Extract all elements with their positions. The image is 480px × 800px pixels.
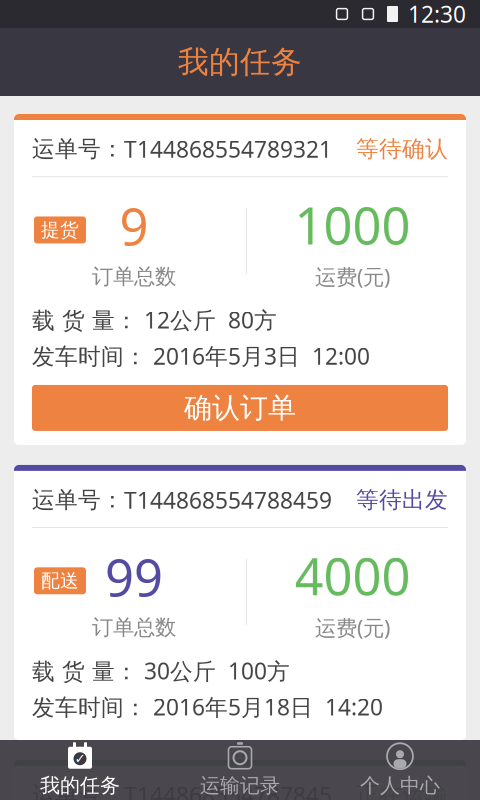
staticText: 12:30 (408, 0, 466, 29)
staticText: 运单号： (32, 486, 124, 514)
staticText: 等待确认 (356, 135, 448, 163)
button[interactable]: 运输记录 (160, 740, 320, 800)
staticText: 我的任务 (40, 773, 120, 798)
staticText: T144868554787845 (124, 780, 332, 800)
staticText: 确认订单 (184, 391, 296, 425)
staticText: 运单号： (32, 781, 124, 800)
staticText: ✓ (74, 751, 85, 766)
staticText: 运费(元) (315, 262, 390, 291)
button[interactable]: 运单号： (14, 114, 466, 445)
button[interactable]: ✓ (0, 740, 160, 800)
staticText: T144868554789321 (124, 134, 332, 164)
staticText: 发车时间： 2016年5月3日 12:00 (32, 341, 370, 371)
staticText: 运输记录 (200, 773, 280, 798)
staticText: 我的任务 (178, 43, 302, 81)
staticText: 运单号： (32, 135, 124, 163)
staticText: T144868554788459 (124, 485, 332, 515)
staticText: 9 (119, 192, 148, 259)
staticText: 订单总数 (92, 614, 176, 641)
staticText: 载 货 量： 30公斤 100方 (32, 656, 290, 686)
staticText: 订单总数 (92, 263, 176, 290)
staticText: 1000 (294, 191, 410, 258)
button[interactable]: 运单号： (14, 760, 466, 800)
staticText: 配送 (41, 569, 79, 592)
staticText: 运费(元) (315, 613, 390, 642)
staticText: 个人中心 (360, 773, 440, 798)
staticText: 正在运输 (356, 781, 448, 800)
staticText: 提货 (41, 218, 79, 241)
button[interactable]: 运单号： (14, 465, 466, 740)
button[interactable]: 确认订单 (32, 385, 448, 431)
staticText: 载 货 量： 12公斤 80方 (32, 305, 277, 335)
staticText: 99 (105, 543, 163, 610)
staticText: 4000 (294, 542, 410, 609)
staticText: 等待出发 (356, 486, 448, 514)
button[interactable]: 个人中心 (320, 740, 480, 800)
staticText: 发车时间： 2016年5月18日 14:20 (32, 692, 383, 722)
